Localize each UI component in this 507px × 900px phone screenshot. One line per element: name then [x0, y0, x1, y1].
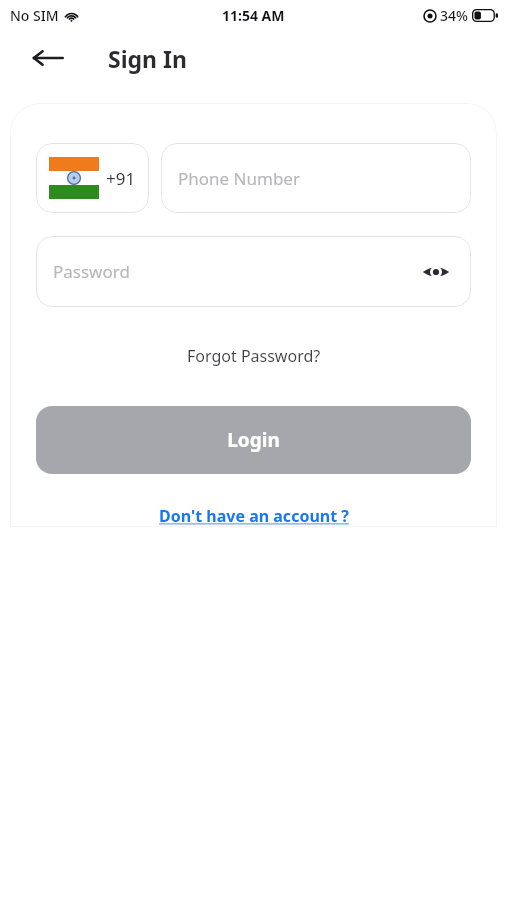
button[interactable]: +91 — [36, 143, 149, 213]
staticText: Forgot Password? — [187, 345, 321, 367]
button[interactable]: Forgot Password? — [36, 345, 471, 367]
staticText: Password — [53, 260, 130, 283]
button[interactable]: Password — [36, 236, 471, 307]
staticText: 11:54 AM — [222, 6, 285, 25]
button[interactable]: Phone Number — [161, 143, 471, 213]
button[interactable]: Login — [36, 406, 471, 474]
staticText: Phone Number — [178, 167, 300, 190]
staticText: Sign In — [108, 43, 187, 74]
staticText: Don't have an account ? — [159, 505, 349, 527]
staticText: Login — [227, 427, 280, 453]
button[interactable]: Back — [26, 36, 70, 80]
staticText: 34% — [440, 6, 468, 25]
staticText: No SIM — [10, 6, 59, 25]
button[interactable]: Show password — [417, 253, 455, 291]
button[interactable]: Don't have an account ? — [36, 505, 471, 527]
staticText: +91 — [106, 167, 136, 190]
